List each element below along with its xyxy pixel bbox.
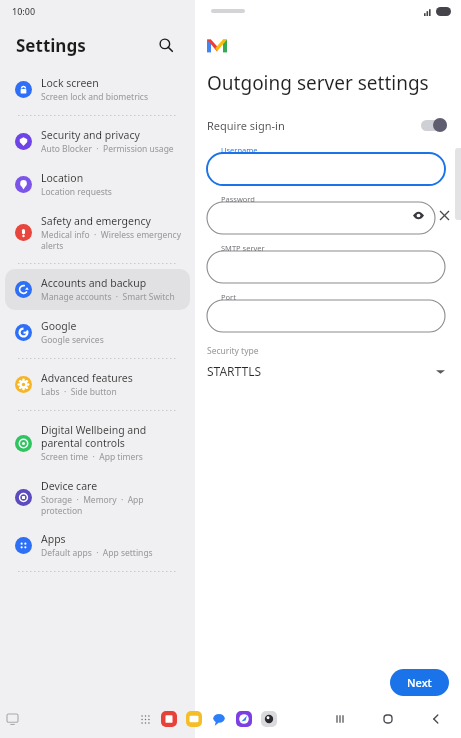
staticText: Lock screen xyxy=(41,76,99,90)
staticText: Screen lock and biometrics xyxy=(41,91,148,103)
button[interactable]: note xyxy=(161,711,177,727)
button[interactable]: Clear xyxy=(435,206,453,224)
button[interactable]: Home xyxy=(379,710,397,728)
staticText: Security and privacy xyxy=(41,128,140,142)
staticText: Storage · Memory · App protection xyxy=(41,494,182,516)
button[interactable]: Recent tasks xyxy=(5,712,19,726)
button[interactable]: Safety and emergency xyxy=(5,207,190,258)
staticText: Location requests xyxy=(41,186,112,198)
button[interactable]: STARTTLS xyxy=(195,363,461,379)
staticText: Auto Blocker · Permission usage xyxy=(41,143,174,155)
button[interactable]: Username xyxy=(207,147,445,185)
staticText: Require sign-in xyxy=(207,118,285,133)
staticText: Default apps · App settings xyxy=(41,547,153,559)
staticText: Google xyxy=(41,319,77,333)
staticText: Settings xyxy=(16,34,86,57)
button[interactable]: Advanced features xyxy=(5,364,190,405)
staticText: 10:00 xyxy=(12,5,36,17)
button[interactable]: internet xyxy=(236,711,252,727)
button[interactable]: Accounts and backup xyxy=(5,269,190,310)
staticText: Google services xyxy=(41,334,104,346)
button[interactable]: Apps xyxy=(5,525,190,566)
staticText: Security type xyxy=(207,345,259,357)
staticText: Next xyxy=(407,675,432,690)
button[interactable]: Port xyxy=(207,294,445,332)
staticText: Digital Wellbeing and parental controls xyxy=(41,423,182,450)
staticText: Location xyxy=(41,171,84,185)
staticText: Safety and emergency xyxy=(41,214,151,228)
button[interactable]: SMTP server xyxy=(207,245,445,283)
button[interactable]: Require sign-in xyxy=(195,112,461,138)
button[interactable]: gallery xyxy=(186,711,202,727)
button[interactable]: camera xyxy=(261,711,277,727)
button[interactable]: Location xyxy=(5,164,190,205)
button[interactable]: Password xyxy=(207,196,435,234)
staticText: Outgoing server settings xyxy=(207,70,429,96)
staticText: STARTTLS xyxy=(207,363,262,379)
staticText: Username xyxy=(221,145,258,155)
button[interactable]: Digital Wellbeing and parental controls xyxy=(5,416,190,470)
button[interactable]: Show password xyxy=(411,208,425,222)
staticText: Screen time · App timers xyxy=(41,451,143,463)
button[interactable]: Google xyxy=(5,312,190,353)
staticText: Password xyxy=(221,194,255,204)
staticText: Apps xyxy=(41,532,66,546)
button[interactable]: messages xyxy=(211,711,227,727)
staticText: Labs · Side button xyxy=(41,386,117,398)
staticText: SMTP server xyxy=(221,243,265,253)
button[interactable]: Search settings xyxy=(153,32,179,58)
staticText: Port xyxy=(221,292,236,302)
button[interactable]: Security and privacy xyxy=(5,121,190,162)
staticText: Medical info · Wireless emergency alerts xyxy=(41,229,182,251)
staticText: Device care xyxy=(41,479,98,493)
button[interactable]: Recents xyxy=(331,710,349,728)
button[interactable]: Back xyxy=(427,710,445,728)
staticText: Accounts and backup xyxy=(41,276,147,290)
button[interactable]: Lock screen xyxy=(5,69,190,110)
button[interactable]: Next xyxy=(390,669,449,696)
staticText: Manage accounts · Smart Switch xyxy=(41,291,175,303)
button[interactable]: All apps xyxy=(138,712,152,726)
staticText: Advanced features xyxy=(41,371,133,385)
button[interactable]: Device care xyxy=(5,472,190,523)
